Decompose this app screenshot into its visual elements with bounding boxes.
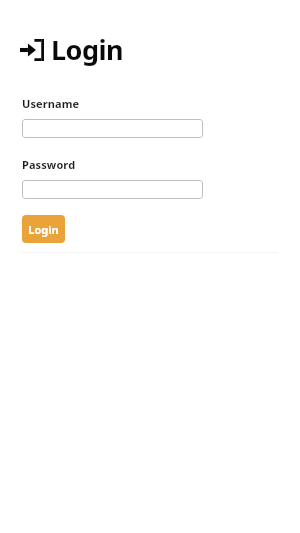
other: Login (20, 39, 44, 61)
staticText: Login (28, 222, 59, 237)
button[interactable]: Username (22, 119, 203, 138)
staticText: Password (22, 157, 76, 172)
staticText: Login (51, 31, 124, 68)
button[interactable]: Password (22, 180, 203, 199)
staticText: Username (22, 96, 80, 111)
button[interactable]: Login (22, 215, 65, 243)
